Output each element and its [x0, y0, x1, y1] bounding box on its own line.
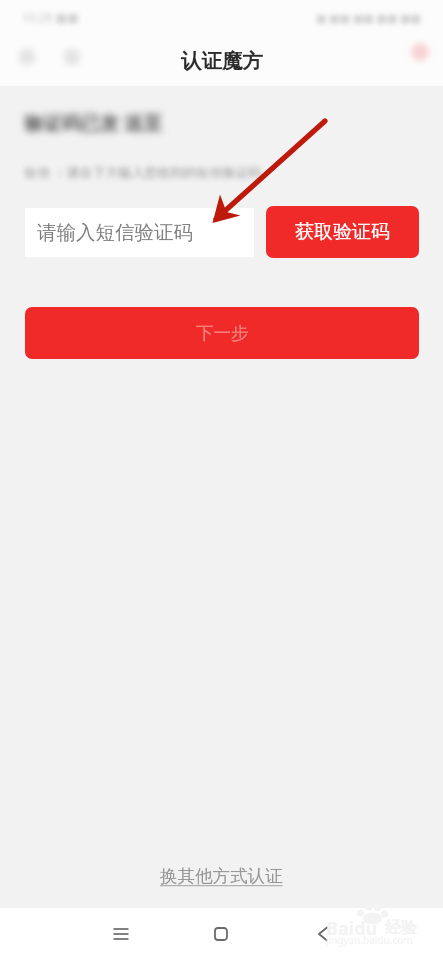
button[interactable]: 请输入短信验证码	[25, 208, 254, 257]
button[interactable]: 换其他方式认证	[0, 861, 443, 891]
staticText: 认证魔方	[181, 48, 263, 74]
staticText: 10:28 ■■	[22, 9, 79, 25]
staticText: ■ ■■ ■■ ■■ ■■	[316, 10, 421, 25]
button[interactable]: Recent apps	[96, 908, 145, 960]
staticText: 短信 ：请在下方输入您收到的短信验证码	[24, 163, 262, 181]
button[interactable]: Home	[196, 908, 245, 960]
button[interactable]: Back	[8, 38, 46, 76]
staticText: 验证码已发 送至	[24, 110, 162, 136]
staticText: 获取验证码	[295, 220, 390, 244]
staticText: 下一步	[196, 322, 249, 344]
button[interactable]: 下一步	[25, 307, 419, 359]
button[interactable]: 获取验证码	[266, 206, 419, 258]
button[interactable]: Close	[53, 38, 91, 76]
button[interactable]: More	[401, 33, 439, 71]
staticText: 请输入短信验证码	[37, 220, 193, 245]
staticText: 换其他方式认证	[160, 865, 283, 887]
button[interactable]: Back	[298, 908, 347, 960]
staticText: 经验	[385, 918, 417, 938]
staticText: Baidu	[326, 916, 378, 941]
staticText: jingyan.baidu.com	[326, 933, 413, 947]
